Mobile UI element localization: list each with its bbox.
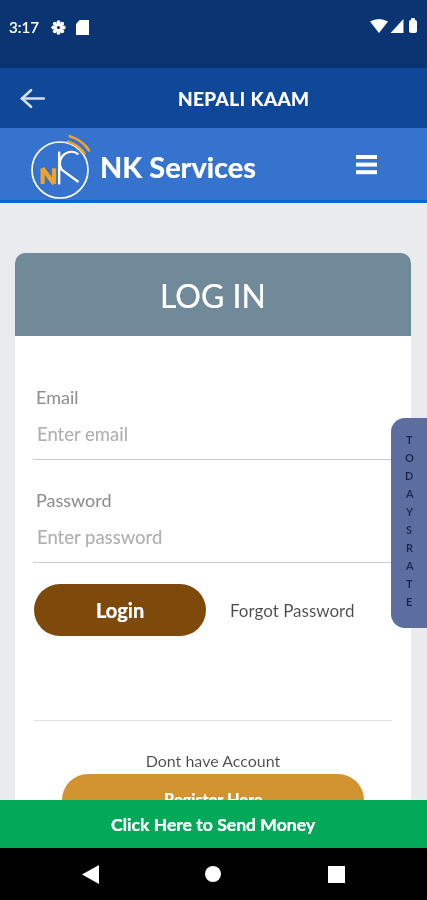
staticText: D <box>405 469 414 482</box>
staticText: Register Here <box>164 790 263 810</box>
button[interactable]: Home <box>195 856 231 892</box>
button[interactable]: Forgot Password <box>226 594 359 626</box>
staticText: Enter email <box>37 423 129 445</box>
button[interactable]: Recent apps <box>318 856 354 892</box>
button[interactable]: Menu <box>349 147 383 181</box>
staticText: Dont have Account <box>15 751 411 770</box>
staticText: LOG IN <box>160 276 266 314</box>
button[interactable]: Click Here to Send Money <box>0 800 427 848</box>
staticText: E <box>406 595 413 608</box>
staticText: Click Here to Send Money <box>111 814 316 835</box>
staticText: A <box>406 559 414 572</box>
staticText: Enter password <box>37 526 163 548</box>
button[interactable]: T <box>391 418 427 628</box>
staticText: A <box>406 487 414 500</box>
staticText: NEPALI KAAM <box>178 87 310 110</box>
button[interactable]: Back <box>72 856 108 892</box>
staticText: NK Services <box>100 149 257 184</box>
staticText: Forgot Password <box>230 600 355 620</box>
staticText: T <box>406 433 413 446</box>
staticText: O <box>405 451 414 464</box>
staticText: Password <box>36 489 112 511</box>
button[interactable]: Back <box>12 78 52 118</box>
staticText: S <box>406 523 413 536</box>
staticText: Email <box>36 386 79 408</box>
staticText: Login <box>96 598 145 622</box>
staticText: 3:17 <box>9 18 39 36</box>
button[interactable]: Login <box>34 584 206 636</box>
staticText: Y <box>406 505 414 518</box>
staticText: R <box>406 541 414 554</box>
staticText: T <box>406 577 413 590</box>
button[interactable]: Register Here <box>62 774 364 826</box>
